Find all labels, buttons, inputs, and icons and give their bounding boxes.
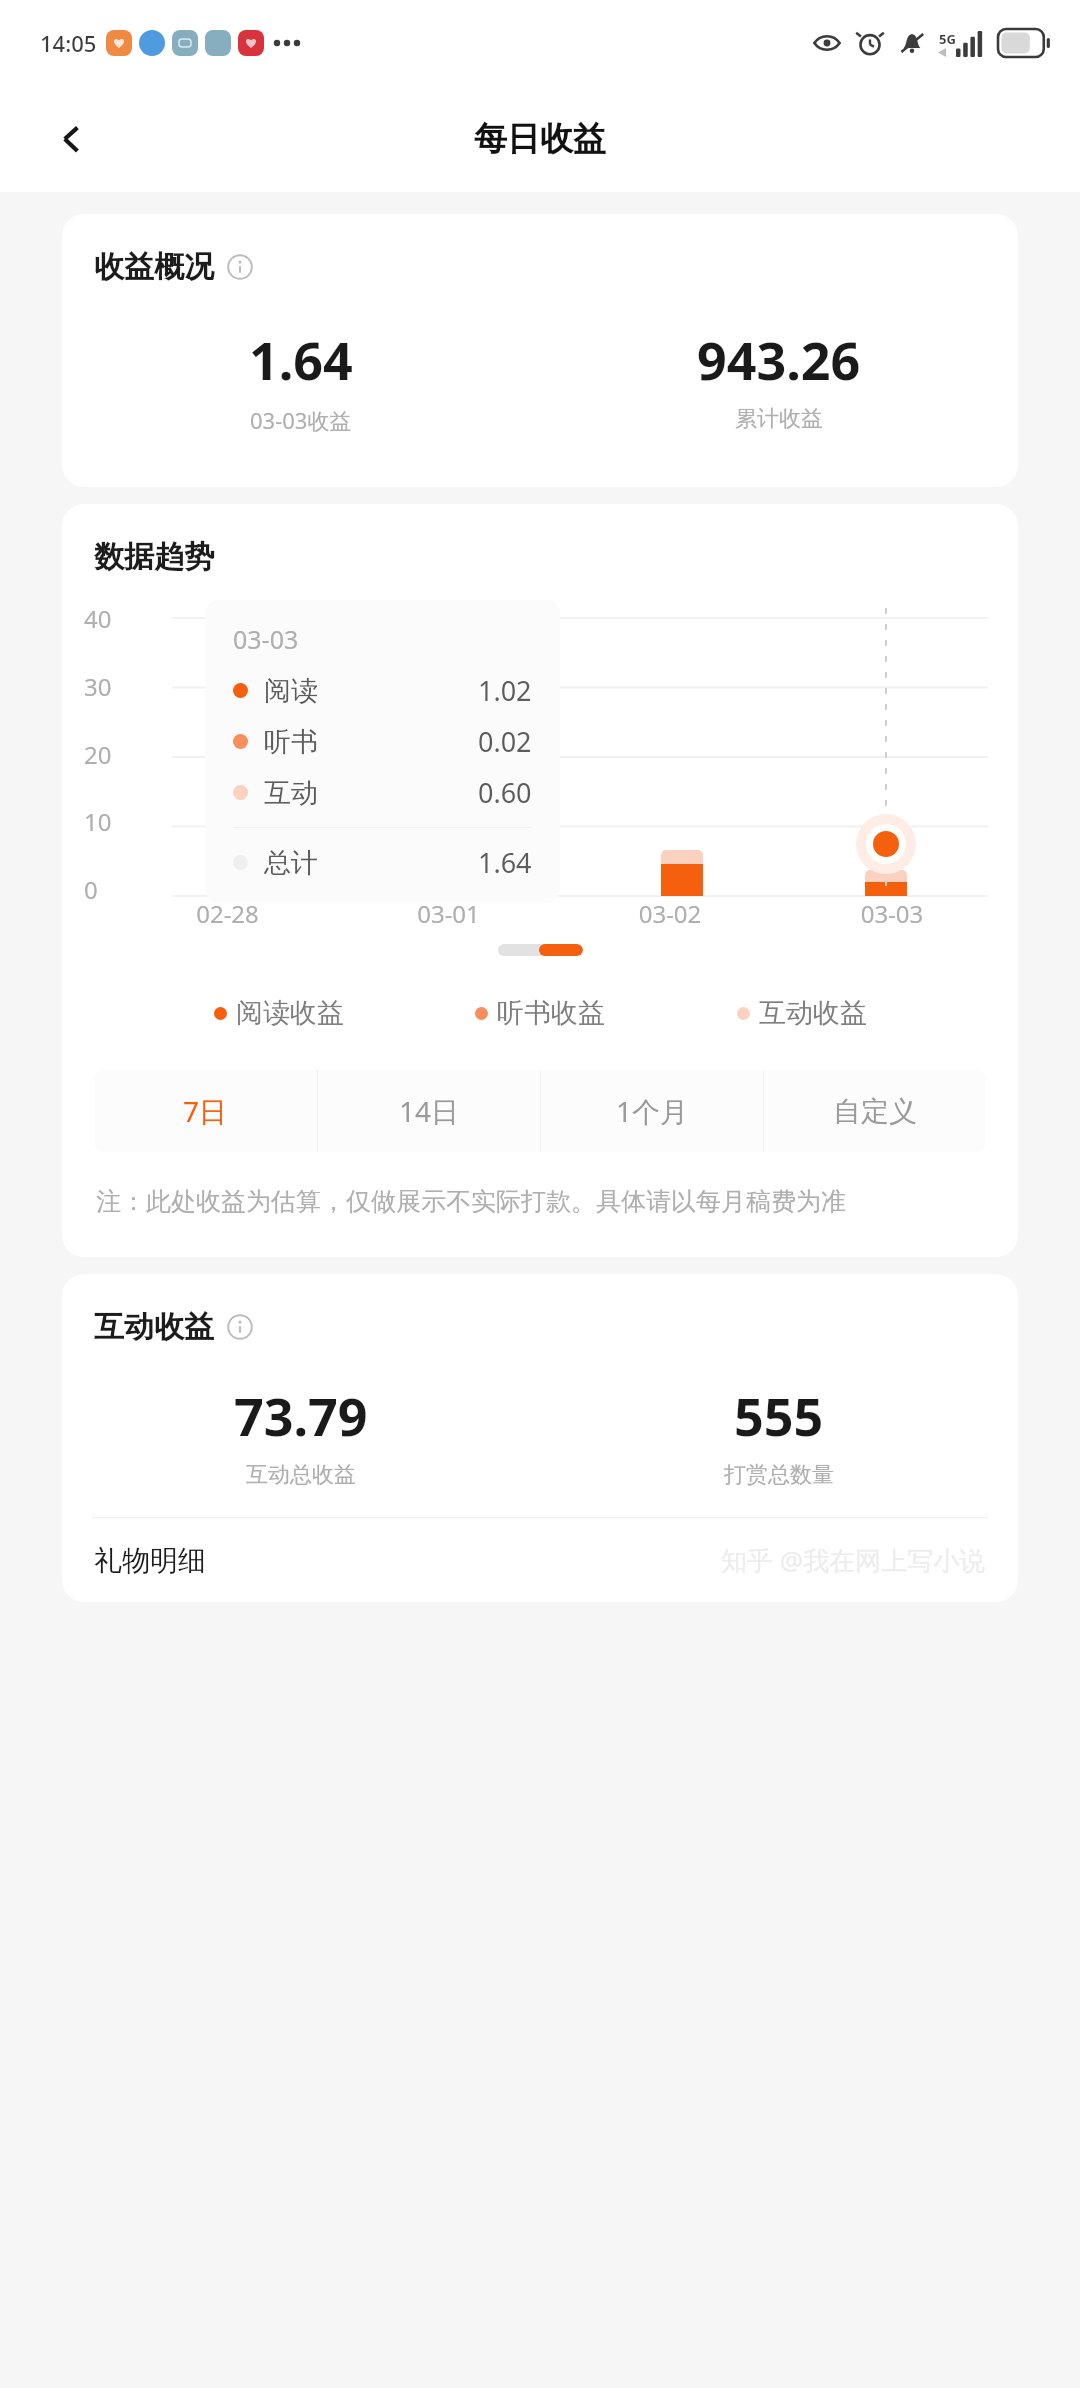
staticText: 5G (939, 30, 956, 48)
staticText: 7日 (183, 1092, 228, 1130)
staticText: 打赏总数量 (724, 1461, 834, 1489)
staticText: 1.64 (478, 844, 532, 881)
staticText: 03-03收益 (250, 405, 352, 435)
staticText: 1.64 (249, 324, 353, 395)
button[interactable]: 7日 (94, 1070, 317, 1152)
staticText: 总计 (264, 846, 318, 880)
staticText: 每日收益 (474, 118, 606, 160)
staticText: 收益概况 (94, 248, 214, 286)
staticText: 30 (84, 670, 112, 703)
staticText: 943.26 (697, 324, 861, 395)
staticText: 互动 (264, 776, 318, 810)
staticText: 注：此处收益为估算，仅做展示不实际打款。具体请以每月稿费为准 (96, 1186, 846, 1217)
button[interactable]: 14日 (318, 1070, 540, 1152)
staticText: 03-03 (233, 622, 299, 656)
staticText: 知乎 @我在网上写小说 (721, 1542, 986, 1578)
staticText: 1.02 (478, 672, 532, 709)
staticText: 14:05 (40, 28, 97, 58)
staticText: 0.02 (478, 723, 532, 760)
staticText: 02-28 (117, 897, 338, 930)
staticText: 互动收益 (94, 1308, 214, 1346)
button[interactable]: 礼物明细 (94, 1542, 986, 1578)
button[interactable]: 1个月 (541, 1070, 763, 1152)
staticText: 20 (84, 738, 112, 771)
staticText: 1个月 (616, 1092, 689, 1130)
staticText: 14日 (399, 1092, 460, 1130)
button[interactable]: 自定义 (764, 1070, 986, 1152)
staticText: 数据趋势 (94, 538, 214, 576)
staticText: 03-02 (559, 897, 781, 930)
staticText: 10 (84, 805, 112, 838)
staticText: 阅读收益 (236, 996, 344, 1030)
staticText: 互动收益 (759, 996, 867, 1030)
staticText: 0.60 (478, 774, 532, 811)
staticText: 555 (734, 1380, 824, 1451)
staticText: 听书收益 (497, 996, 605, 1030)
staticText: 73.79 (234, 1380, 368, 1451)
staticText: 听书 (264, 725, 318, 759)
staticText: 阅读 (264, 674, 318, 708)
staticText: 03-03 (781, 897, 1003, 930)
staticText: 03-01 (338, 897, 559, 930)
staticText: 40 (84, 602, 112, 635)
staticText: 自定义 (833, 1094, 917, 1129)
staticText: 礼物明细 (94, 1543, 206, 1578)
staticText: 0 (84, 873, 98, 906)
staticText: 累计收益 (735, 405, 823, 433)
button[interactable]: Back (44, 111, 100, 167)
staticText: 互动总收益 (246, 1461, 356, 1489)
